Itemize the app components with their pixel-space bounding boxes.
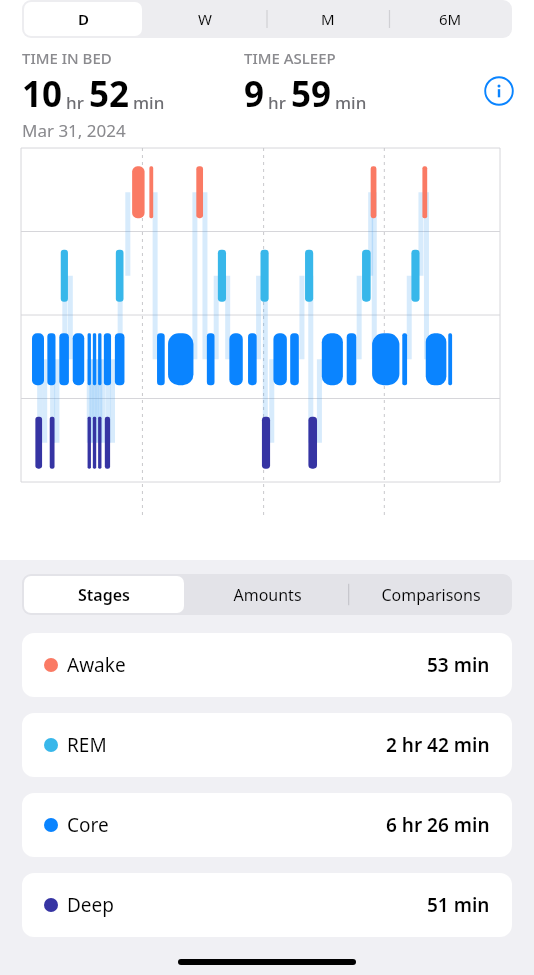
button[interactable]: M: [268, 2, 387, 36]
staticText: 6M: [439, 9, 462, 29]
staticText: M: [321, 9, 335, 29]
button[interactable]: Info: [482, 74, 516, 108]
staticText: TIME IN BED: [22, 48, 112, 68]
staticText: hr: [66, 91, 84, 114]
button[interactable]: 6M: [391, 2, 510, 36]
staticText: TIME ASLEEP: [244, 48, 336, 68]
staticText: 51 min: [427, 892, 490, 918]
staticText: 52: [89, 70, 130, 118]
staticText: Stages: [78, 584, 130, 606]
button[interactable]: REM: [22, 713, 512, 777]
staticText: Awake: [67, 652, 126, 678]
staticText: 6 hr 26 min: [386, 812, 490, 838]
button[interactable]: W: [146, 2, 264, 36]
button[interactable]: Comparisons: [351, 576, 510, 613]
button[interactable]: Amounts: [188, 576, 347, 613]
button[interactable]: Deep: [22, 873, 512, 937]
button[interactable]: D: [24, 2, 142, 36]
staticText: 10: [22, 70, 63, 118]
staticText: 2 hr 42 min: [386, 732, 490, 758]
staticText: min: [133, 91, 165, 114]
staticText: min: [335, 91, 367, 114]
staticText: hr: [268, 91, 286, 114]
staticText: D: [78, 9, 89, 29]
button[interactable]: Stages: [24, 576, 184, 613]
staticText: Mar 31, 2024: [22, 119, 126, 142]
staticText: 53 min: [427, 652, 490, 678]
staticText: REM: [67, 732, 107, 758]
staticText: 9: [244, 70, 265, 118]
staticText: Amounts: [233, 584, 302, 606]
staticText: Comparisons: [381, 584, 481, 606]
button[interactable]: Core: [22, 793, 512, 857]
staticText: 59: [291, 70, 332, 118]
staticText: Deep: [67, 892, 114, 918]
staticText: W: [198, 9, 212, 29]
staticText: Core: [67, 812, 109, 838]
button[interactable]: Awake: [22, 633, 512, 697]
